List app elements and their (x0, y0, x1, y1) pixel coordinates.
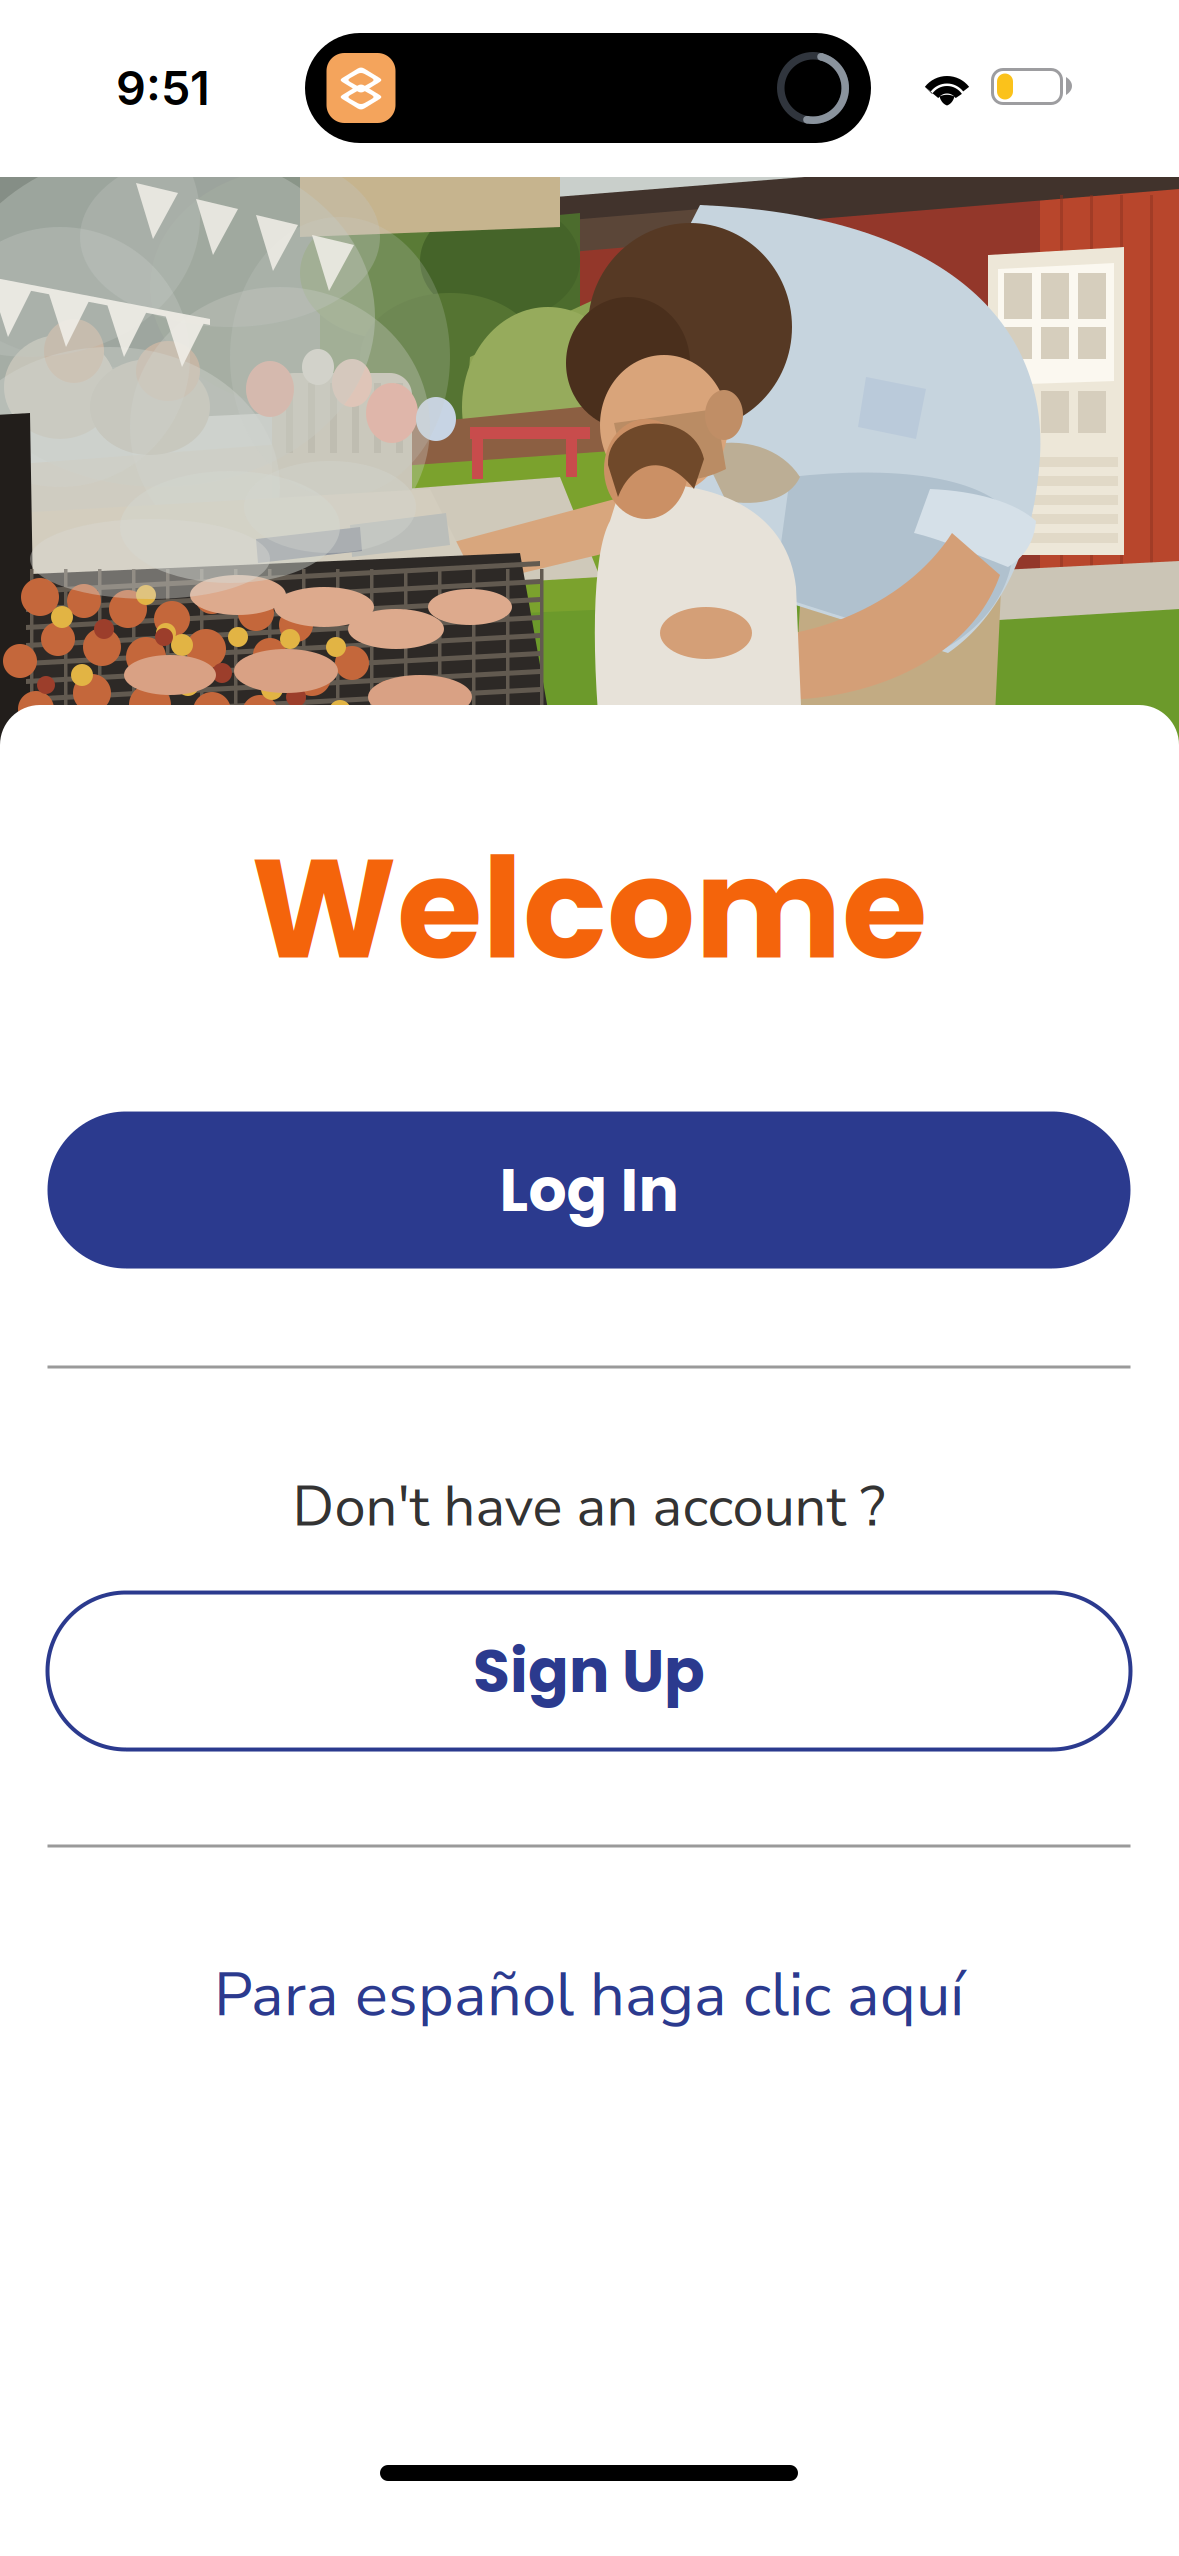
button[interactable]: Log In (47, 1111, 1130, 1268)
staticText: Log In (499, 1148, 678, 1232)
staticText: Para español haga clic aquí (214, 1953, 964, 2037)
staticText: Welcome (251, 812, 927, 1006)
staticText: Don't have an account ? (292, 1469, 885, 1545)
button[interactable]: Para español haga clic aquí (214, 1957, 964, 2033)
staticText: 9:51 (116, 60, 210, 116)
staticText: Sign Up (473, 1629, 705, 1713)
button[interactable]: Sign Up (47, 1592, 1130, 1749)
